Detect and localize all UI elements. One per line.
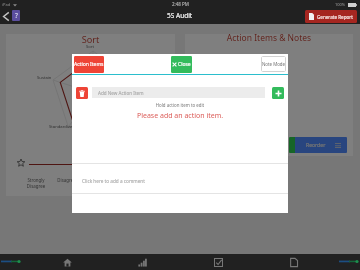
staticText: Sustain <box>37 75 52 81</box>
button[interactable]: Charts <box>104 254 180 270</box>
staticText: Close <box>178 61 191 68</box>
button[interactable]: Add action item <box>272 87 284 99</box>
staticText: Hold action item to edit <box>72 102 288 108</box>
staticText: 100% <box>335 2 346 7</box>
staticText: Standardize <box>49 124 73 130</box>
button[interactable]: Add New Action Item <box>92 87 265 98</box>
staticText: Action Items <box>74 61 104 68</box>
staticText: iPad <box>2 2 11 7</box>
staticText: Add New Action Item <box>98 90 144 96</box>
staticText: Disagree <box>43 177 90 183</box>
staticText: ? <box>15 11 18 20</box>
button[interactable]: Delete action item <box>76 87 88 99</box>
button[interactable]: Close <box>171 56 192 73</box>
staticText: Please add an action item. <box>72 111 288 121</box>
staticText: 2:48 PM <box>172 1 189 7</box>
button[interactable]: Note Mode <box>261 56 286 72</box>
button[interactable]: Action Items <box>74 56 104 73</box>
button[interactable]: Documents <box>256 254 332 270</box>
button[interactable]: Back <box>2 11 10 22</box>
staticText: Click here to add a comment <box>82 178 145 184</box>
button[interactable]: Generate Report <box>305 10 357 23</box>
button[interactable]: Click here to add a comment <box>72 164 288 193</box>
button[interactable]: Help <box>12 10 20 21</box>
staticText: Strongly Disagree <box>18 177 54 189</box>
staticText: Sort <box>6 33 175 46</box>
staticText: Note Mode <box>262 61 286 67</box>
staticText: Sort <box>86 44 95 50</box>
button[interactable]: Home <box>29 254 105 270</box>
button[interactable]: Reorder <box>289 137 347 153</box>
button[interactable]: Audits <box>180 254 256 270</box>
button[interactable]: Favorite <box>17 159 25 167</box>
staticText: 5S Audit <box>167 11 193 20</box>
staticText: Generate Report <box>317 14 353 20</box>
staticText: Reorder <box>306 142 326 149</box>
staticText: Action Items & Notes <box>185 32 353 44</box>
